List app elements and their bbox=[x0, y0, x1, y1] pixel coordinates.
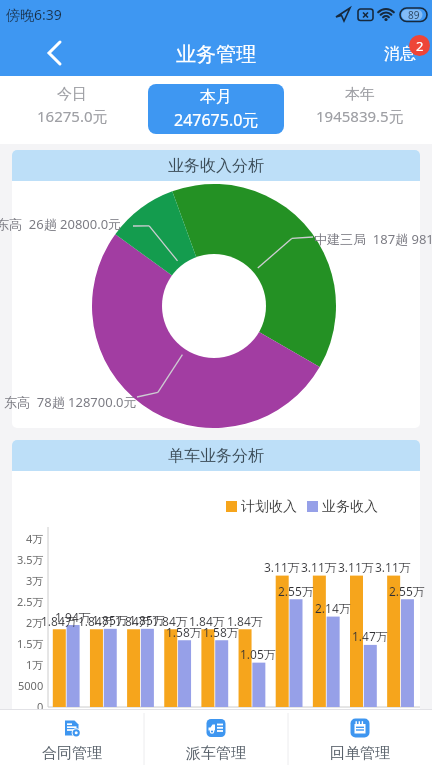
button[interactable] bbox=[148, 84, 284, 134]
staticText: 中建三局 187趟 98175 bbox=[314, 230, 432, 248]
staticText: 3万 bbox=[26, 573, 44, 587]
button[interactable]: 派车管理 bbox=[144, 710, 288, 768]
staticText: 2.55万 bbox=[278, 583, 314, 597]
staticText: 1.84万 bbox=[41, 613, 77, 627]
staticText: 5000 bbox=[18, 678, 44, 692]
staticText: 1.58万 bbox=[203, 624, 239, 638]
staticText: 东高 26趟 20800.0元 bbox=[0, 215, 122, 233]
staticText: 3.11万 bbox=[264, 559, 300, 573]
staticText: 今日 bbox=[57, 85, 87, 104]
staticText: 0 bbox=[37, 699, 44, 713]
button[interactable] bbox=[46, 40, 66, 66]
staticText: 247675.0元 bbox=[174, 109, 259, 129]
button[interactable]: 合同管理 bbox=[0, 710, 144, 768]
staticText: 2.14万 bbox=[315, 600, 351, 614]
staticText: 消息 bbox=[384, 44, 416, 62]
staticText: 89 bbox=[408, 8, 420, 22]
staticText: 1.84万 bbox=[227, 613, 263, 627]
staticText: 傍晚6:39 bbox=[6, 5, 62, 23]
staticText: 2万 bbox=[26, 615, 44, 629]
button[interactable]: 回单管理 bbox=[288, 710, 432, 768]
staticText: 2.55万 bbox=[389, 583, 425, 597]
staticText: 3.5万 bbox=[17, 552, 44, 566]
staticText: 3.11万 bbox=[301, 559, 337, 573]
staticText: 合同管理 bbox=[42, 744, 102, 763]
staticText: 1.84万 bbox=[115, 613, 151, 627]
staticText: 本月 bbox=[200, 87, 232, 107]
staticText: 1.84万 bbox=[78, 613, 114, 627]
staticText: 本年 bbox=[345, 85, 375, 104]
staticText: 派车管理 bbox=[186, 744, 246, 763]
staticText: 1.85万 bbox=[92, 612, 128, 626]
staticText: 回单管理 bbox=[330, 744, 390, 763]
staticText: 1万 bbox=[26, 657, 44, 671]
button[interactable] bbox=[288, 76, 432, 144]
staticText: 1.84万 bbox=[189, 613, 225, 627]
staticText: 1.84万 bbox=[152, 613, 188, 627]
staticText: 业务管理 bbox=[176, 42, 256, 67]
staticText: 1.47万 bbox=[352, 628, 388, 642]
staticText: 1.94万 bbox=[55, 609, 91, 623]
staticText: 东高 78趟 128700.0元 bbox=[4, 393, 137, 411]
staticText: 计划收入 bbox=[241, 498, 297, 515]
button[interactable]: 消息 bbox=[384, 44, 418, 62]
staticText: 4万 bbox=[26, 531, 44, 545]
staticText: 1.58万 bbox=[166, 624, 202, 638]
staticText: 2 bbox=[416, 37, 424, 55]
staticText: 业务收入分析 bbox=[168, 156, 264, 176]
staticText: 1.85万 bbox=[129, 612, 165, 626]
staticText: 16275.0元 bbox=[37, 106, 108, 126]
staticText: 1.05万 bbox=[240, 646, 276, 660]
button[interactable] bbox=[0, 76, 144, 144]
staticText: 3.11万 bbox=[338, 559, 374, 573]
staticText: 1.5万 bbox=[17, 636, 44, 650]
staticText: 业务收入 bbox=[322, 498, 378, 515]
staticText: 1945839.5元 bbox=[316, 106, 404, 126]
staticText: 2.5万 bbox=[17, 594, 44, 608]
staticText: 单车业务分析 bbox=[168, 446, 264, 466]
staticText: 3.11万 bbox=[375, 559, 411, 573]
